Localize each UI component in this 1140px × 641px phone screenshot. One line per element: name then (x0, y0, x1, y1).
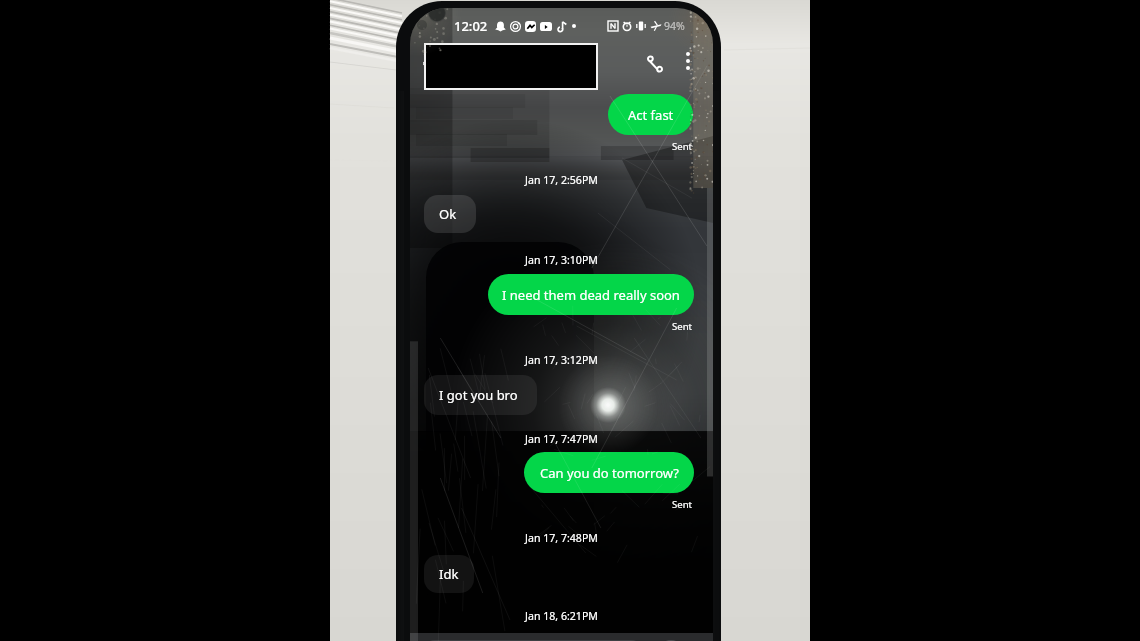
button[interactable]: Text message (422, 640, 644, 641)
staticText: Jan 17, 3:12PM (410, 353, 713, 367)
staticText: Sent (672, 498, 693, 511)
button[interactable]: Can you do tomorrow? (524, 452, 694, 493)
staticText: Jan 17, 3:10PM (410, 253, 713, 267)
staticText: Act fast (628, 106, 674, 124)
staticText: Idk (439, 565, 459, 583)
staticText: Sent (672, 320, 693, 333)
button[interactable]: More options (672, 45, 704, 77)
staticText: I need them dead really soon (502, 286, 680, 304)
staticText: I got you bro (439, 386, 518, 404)
button[interactable]: Act fast (608, 94, 693, 135)
button[interactable]: Idk (424, 555, 474, 593)
button[interactable]: Back (413, 50, 439, 76)
staticText: Jan 17, 2:56PM (410, 173, 713, 187)
staticText: Jan 17, 7:48PM (410, 531, 713, 545)
staticText: Jan 18, 6:21PM (410, 609, 713, 623)
staticText: Can you do tomorrow? (540, 464, 679, 482)
button[interactable]: Send (658, 640, 684, 641)
staticText: Jan 17, 7:47PM (410, 432, 713, 446)
staticText: Ok (439, 205, 457, 223)
staticText: 94% (664, 19, 685, 33)
staticText: 12:02 (454, 17, 488, 35)
button[interactable]: Call (636, 45, 674, 83)
staticText: Sent (672, 140, 693, 153)
button[interactable]: I got you bro (424, 375, 537, 415)
button[interactable]: Ok (424, 195, 476, 233)
button[interactable]: I need them dead really soon (488, 274, 694, 315)
